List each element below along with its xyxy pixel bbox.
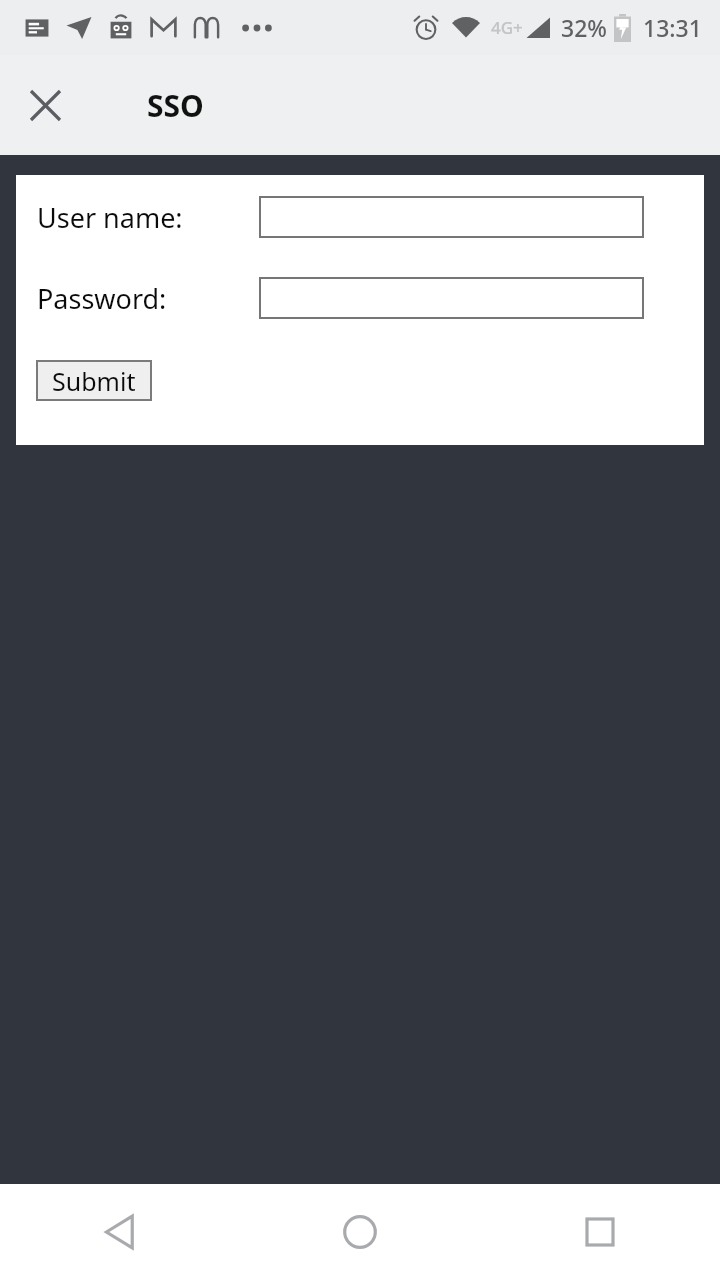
button[interactable]: Recent apps (480, 1184, 720, 1280)
button[interactable]: Home (240, 1184, 480, 1280)
button[interactable]: User name: (259, 196, 644, 238)
button[interactable]: Submit (36, 360, 152, 401)
button[interactable]: Password: (259, 277, 644, 319)
staticText: Password: (37, 280, 167, 317)
staticText: User name: (37, 199, 183, 236)
button[interactable]: Close (20, 80, 70, 130)
staticText: SSO (147, 85, 204, 126)
staticText: 13:31 (643, 12, 702, 43)
button[interactable]: Back (0, 1184, 240, 1280)
staticText: Submit (52, 364, 136, 398)
staticText: 4G+ (491, 16, 523, 39)
staticText: 32% (561, 12, 607, 43)
